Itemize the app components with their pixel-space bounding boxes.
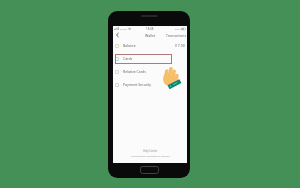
staticText: Help Center (143, 149, 158, 153)
button[interactable]: Payment Security (115, 78, 185, 91)
button[interactable]: Transactions (166, 33, 187, 38)
staticText: Transactions (166, 33, 187, 38)
staticText: 82% (175, 27, 180, 30)
staticText: Balance (123, 43, 136, 48)
staticText: China (120, 27, 127, 30)
button[interactable]: Balance (115, 39, 185, 52)
button[interactable]: Relative Cards (115, 65, 185, 78)
staticText: Relative Cards (123, 69, 146, 74)
staticText: Wallet (145, 33, 156, 38)
button[interactable]: Cards (115, 52, 185, 65)
staticText: 18:48 (146, 27, 154, 31)
staticText: ¥ 7.00 (175, 43, 185, 48)
staticText: Payment Security (123, 82, 152, 87)
staticText: Cards (123, 56, 133, 61)
button[interactable]: Wallet (145, 33, 156, 38)
button[interactable]: Back (113, 31, 121, 39)
staticText: This service is provided by Tencent (131, 154, 170, 157)
